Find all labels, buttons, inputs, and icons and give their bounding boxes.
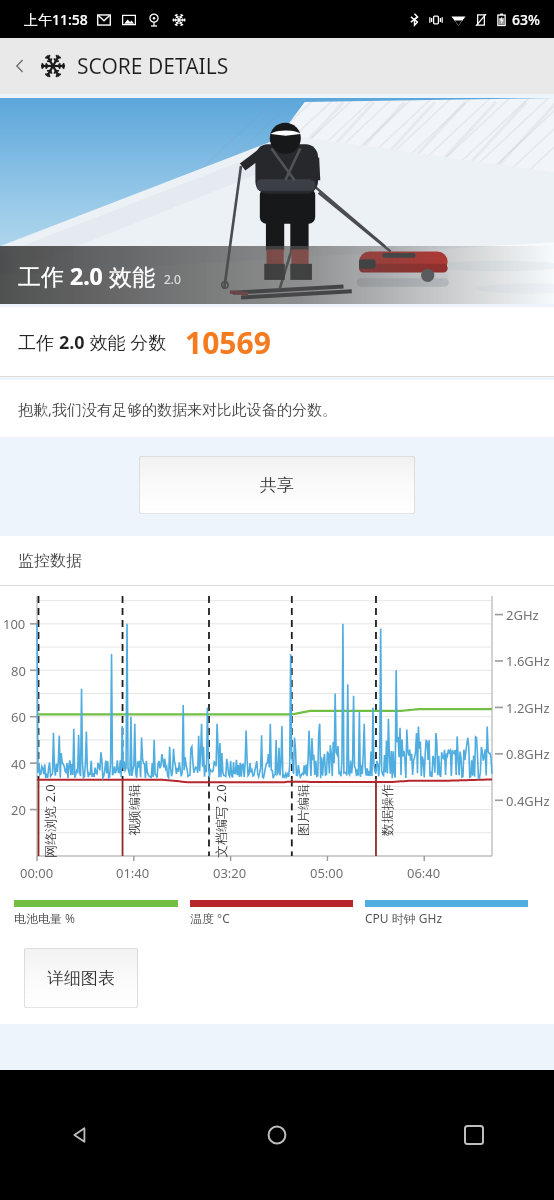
staticText: 01:40 (116, 864, 150, 882)
staticText: 效能 分数 (85, 330, 167, 355)
staticText: 2GHz (506, 606, 539, 624)
staticText: 00:00 (20, 864, 54, 882)
staticText: 2.0 (70, 260, 103, 291)
staticText: 20 (11, 801, 26, 819)
staticText: 电池电量 % (14, 910, 76, 926)
staticText: 05:00 (310, 864, 344, 882)
button[interactable]: Back (56, 1111, 104, 1159)
staticText: 0.8GHz (506, 745, 550, 763)
staticText: 2.0 (164, 271, 181, 287)
staticText: 100 (3, 615, 26, 633)
staticText: 视频编辑 (126, 784, 142, 836)
button[interactable]: Recent apps (450, 1111, 498, 1159)
button[interactable]: 共享 (139, 456, 415, 514)
staticText: 工作 (18, 330, 59, 355)
staticText: SCORE DETAILS (77, 52, 229, 81)
staticText: 1.6GHz (506, 652, 550, 670)
staticText: 效能 (103, 260, 155, 291)
staticText: 温度 °C (190, 910, 230, 926)
staticText: 数据操作 (379, 784, 395, 836)
staticText: 40 (11, 755, 26, 773)
staticText: 1.2GHz (506, 699, 550, 717)
staticText: 共享 (260, 475, 294, 496)
staticText: 0.4GHz (506, 792, 550, 810)
staticText: 抱歉,我们没有足够的数据来对比此设备的分数。 (18, 399, 338, 419)
staticText: 06:40 (407, 864, 441, 882)
staticText: 03:20 (213, 864, 247, 882)
staticText: 详细图表 (47, 968, 115, 989)
staticText: 文档编写 2.0 (212, 784, 230, 858)
button[interactable]: 详细图表 (24, 948, 138, 1008)
button[interactable]: Home (253, 1111, 301, 1159)
staticText: 上午11:58 (24, 10, 88, 29)
staticText: 网络浏览 2.0 (41, 784, 59, 858)
staticText: 60 (11, 708, 26, 726)
staticText: 2.0 (59, 330, 85, 355)
staticText: CPU 时钟 GHz (365, 910, 443, 926)
staticText: 10569 (185, 322, 271, 363)
staticText: 工作 (18, 260, 70, 291)
staticText: 63% (512, 10, 540, 29)
button[interactable]: Back (0, 38, 40, 94)
staticText: 监控数据 (18, 551, 82, 571)
staticText: 图片编辑 (295, 784, 311, 836)
button[interactable]: 工作 (0, 98, 554, 304)
staticText: 80 (11, 662, 26, 680)
